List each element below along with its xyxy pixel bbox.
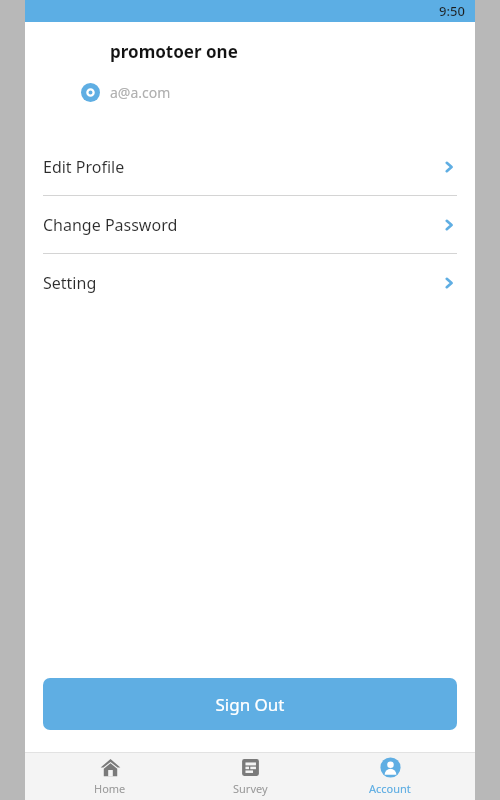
staticText: Home [94, 781, 126, 796]
button[interactable]: Setting [25, 254, 475, 311]
staticText: Account [369, 781, 411, 796]
button[interactable]: Home [55, 753, 165, 800]
staticText: promotoer one [110, 40, 238, 63]
button[interactable]: Change Password [25, 196, 475, 253]
button[interactable]: Account [335, 753, 445, 800]
staticText: Sign Out [215, 693, 285, 716]
staticText: Edit Profile [43, 156, 125, 178]
button[interactable]: Sign Out [43, 678, 457, 730]
button[interactable]: Edit Profile [25, 138, 475, 195]
staticText: Change Password [43, 214, 178, 236]
staticText: Survey [233, 781, 268, 796]
staticText: a@a.com [110, 83, 171, 102]
button[interactable]: Survey [195, 753, 305, 800]
staticText: Setting [43, 272, 97, 294]
staticText: 9:50 [439, 2, 465, 20]
